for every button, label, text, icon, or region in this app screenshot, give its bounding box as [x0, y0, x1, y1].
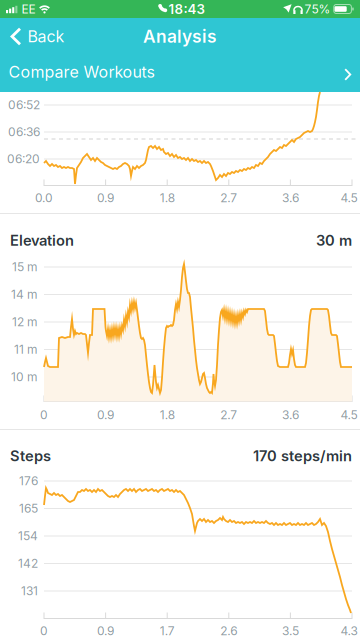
staticText: 154	[18, 529, 38, 543]
staticText: 06:52	[8, 98, 40, 112]
staticText: 0.9	[97, 408, 114, 422]
staticText: Back	[27, 27, 64, 46]
staticText: Analysis	[143, 26, 217, 47]
staticText: 170 steps/min	[253, 447, 352, 465]
staticText: 0	[40, 624, 48, 638]
staticText: 75%	[304, 2, 330, 16]
button[interactable]: Compare Workouts	[0, 52, 360, 92]
staticText: 18:43	[168, 1, 204, 17]
staticText: 11 m	[14, 342, 38, 357]
staticText: 1.8	[160, 408, 175, 422]
staticText: 4.3	[340, 624, 357, 638]
staticText: Steps	[10, 447, 51, 465]
staticText: 142	[18, 556, 38, 571]
staticText: 06:36	[8, 125, 40, 139]
staticText: 0.0	[35, 191, 53, 205]
staticText: 3.6	[282, 408, 299, 422]
staticText: 1.7	[160, 624, 175, 638]
staticText: 2.7	[220, 191, 237, 205]
staticText: 0.9	[97, 624, 114, 638]
staticText: EE	[21, 2, 35, 16]
staticText: 14 m	[11, 287, 38, 302]
staticText: 10 m	[11, 370, 38, 384]
button[interactable]: Back	[10, 27, 64, 46]
staticText: 4.5	[340, 408, 357, 422]
staticText: 4.5	[340, 191, 357, 205]
staticText: 131	[21, 584, 38, 598]
staticText: 15 m	[12, 260, 38, 274]
staticText: 0	[40, 408, 48, 422]
staticText: 2.6	[220, 624, 237, 638]
staticText: 165	[19, 501, 38, 516]
staticText: 12 m	[12, 315, 38, 329]
staticText: 06:20	[7, 152, 40, 166]
staticText: 1.8	[160, 191, 175, 205]
staticText: 3.6	[282, 191, 299, 205]
staticText: 0.9	[97, 191, 114, 205]
staticText: 2.7	[220, 408, 237, 422]
staticText: Compare Workouts	[8, 63, 154, 81]
staticText: 3.5	[282, 624, 299, 638]
staticText: 30 m	[316, 232, 352, 249]
staticText: 176	[19, 474, 38, 488]
staticText: Elevation	[10, 232, 74, 249]
